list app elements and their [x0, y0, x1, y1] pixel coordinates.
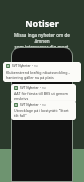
- button[interactable]: SVT Nyheter: [11, 84, 76, 103]
- staticText: Missa inga nyheter om de ämnen som intre…: [8, 32, 76, 50]
- staticText: • nu: [40, 86, 46, 90]
- staticText: SVT Nyheter: [20, 86, 39, 90]
- staticText: Utvecklage på i bostyrått: "Stort tilt f…: [14, 108, 73, 118]
- staticText: AAT för första till BKS ut genom enskriv…: [14, 91, 73, 101]
- staticText: SVT Nyheter: [20, 103, 39, 107]
- button[interactable]: SVT Nyheter: [3, 62, 81, 82]
- button[interactable]: SVT Nyheter: [11, 101, 76, 120]
- staticText: • nu: [32, 64, 38, 68]
- staticText: Klubenstrend kraftig nibutsveckling – ha…: [6, 70, 71, 80]
- staticText: SVT Nyheter: [12, 64, 31, 68]
- staticText: • nu: [40, 103, 46, 107]
- staticText: Notiser: [25, 17, 59, 29]
